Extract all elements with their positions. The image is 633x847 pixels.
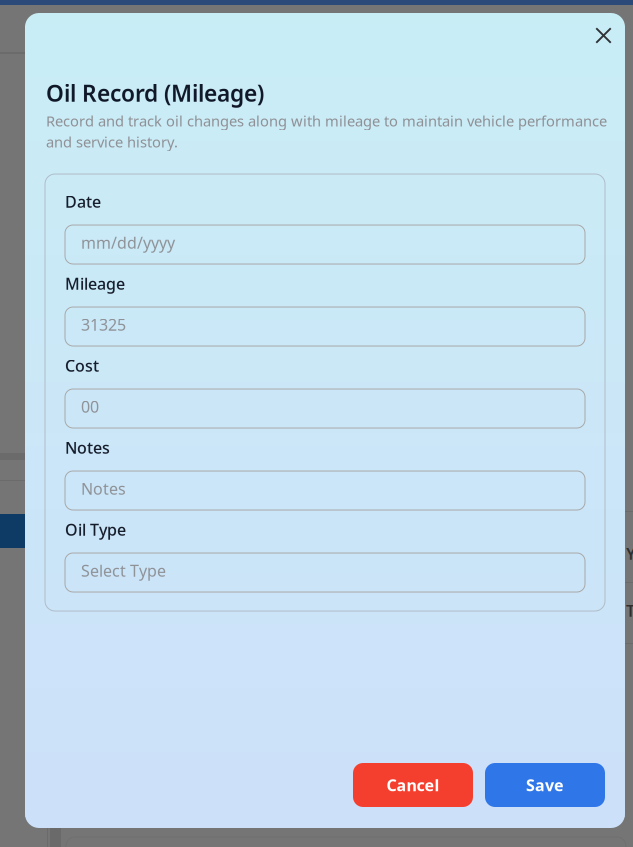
- staticText: 00: [81, 396, 99, 417]
- staticText: Notes: [65, 437, 110, 458]
- staticText: Cancel: [386, 774, 439, 796]
- staticText: and service history.: [46, 132, 178, 151]
- staticText: 31325: [81, 314, 126, 335]
- button[interactable]: Cancel: [353, 763, 473, 807]
- staticText: Record and track oil changes along with …: [46, 111, 607, 130]
- staticText: Select Type: [81, 560, 166, 581]
- staticText: Mileage: [65, 273, 125, 294]
- staticText: Date: [65, 191, 101, 212]
- staticText: mm/dd/yyyy: [81, 232, 175, 253]
- staticText: T: [626, 600, 633, 621]
- staticText: Notes: [81, 478, 126, 499]
- button[interactable]: Save: [485, 763, 605, 807]
- staticText: Y: [626, 543, 633, 564]
- staticText: Cost: [65, 355, 99, 376]
- staticText: Oil Record (Mileage): [46, 78, 264, 108]
- staticText: Oil Type: [65, 519, 126, 540]
- staticText: Save: [526, 774, 564, 796]
- button[interactable]: Close: [581, 13, 625, 57]
